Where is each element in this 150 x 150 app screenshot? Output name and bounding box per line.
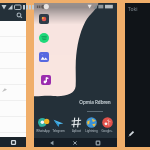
button[interactable]: Recent apps <box>10 139 17 146</box>
button[interactable]: Close <box>72 140 78 146</box>
button[interactable] <box>0 69 26 85</box>
button[interactable]: Edit <box>127 129 136 138</box>
staticText: Lightning <box>85 129 98 133</box>
button[interactable] <box>0 37 26 53</box>
button[interactable]: WhatsApp <box>35 117 51 133</box>
button[interactable] <box>0 21 26 37</box>
button[interactable]: Back <box>49 140 55 146</box>
button[interactable] <box>0 101 26 117</box>
button[interactable]: Aplicat <box>68 117 84 133</box>
button[interactable]: Search <box>16 12 23 19</box>
button[interactable]: Recent apps <box>95 140 101 146</box>
staticText: Google+ <box>101 129 113 133</box>
staticText: Toki <box>128 6 138 13</box>
staticText: Opmia Rdbren <box>79 99 111 105</box>
staticText: Telegram <box>52 129 65 133</box>
button[interactable]: App shortcut <box>39 14 49 24</box>
button[interactable]: Google+ <box>99 117 115 133</box>
button[interactable] <box>0 117 26 133</box>
button[interactable]: App shortcut <box>41 75 51 85</box>
button[interactable]: Telegram <box>50 117 66 133</box>
staticText: WhatsApp <box>36 129 50 133</box>
button[interactable]: App shortcut <box>39 33 49 43</box>
button[interactable] <box>0 85 26 101</box>
staticText: Aplicat <box>72 129 81 133</box>
button[interactable]: App shortcut <box>39 52 49 62</box>
button[interactable] <box>0 53 26 69</box>
button[interactable]: Lightning <box>83 117 99 133</box>
